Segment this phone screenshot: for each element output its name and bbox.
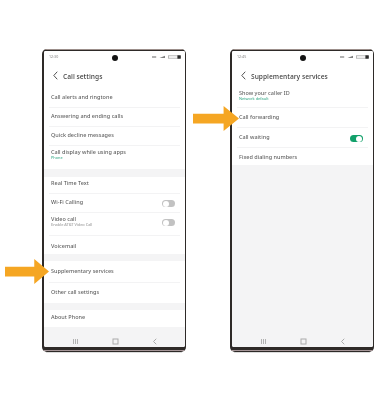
staticText: Quick decline messages	[51, 131, 114, 138]
staticText: Call forwarding	[239, 113, 280, 120]
button[interactable]: Voicemail	[44, 236, 185, 255]
button[interactable]: Wi-Fi Calling	[156, 197, 180, 209]
staticText: Phone	[51, 155, 63, 160]
button[interactable]: Video call	[44, 210, 185, 232]
button[interactable]: Video call	[156, 216, 180, 228]
staticText: 12:30	[49, 54, 59, 59]
staticText: Real Time Text	[51, 179, 89, 186]
staticText: Call settings	[63, 72, 103, 81]
staticText: Enable AT&T Video Call	[51, 222, 93, 227]
button[interactable]: About Phone	[44, 307, 185, 326]
button[interactable]: Back	[146, 334, 162, 347]
button[interactable]: Back	[334, 334, 350, 347]
button[interactable]: Home	[107, 334, 123, 347]
staticText: About Phone	[51, 313, 86, 320]
staticText: Network default	[239, 96, 269, 101]
button[interactable]: Recents	[255, 334, 271, 347]
staticText: Answering and ending calls	[51, 112, 124, 119]
staticText: Supplementary services	[251, 72, 328, 81]
staticText: Show your caller ID	[239, 89, 290, 96]
button[interactable]: Answering and ending calls	[44, 106, 185, 125]
button[interactable]: Call waiting	[344, 132, 368, 144]
button[interactable]: Call alerts and ringtone	[44, 87, 185, 106]
staticText: Video call	[51, 215, 77, 222]
staticText: Supplementary services	[51, 267, 114, 274]
button[interactable]: Show your caller ID	[232, 84, 373, 106]
staticText: Call alerts and ringtone	[51, 93, 113, 100]
button[interactable]: Fixed dialing numbers	[232, 147, 373, 166]
button[interactable]: Other call settings	[44, 282, 185, 301]
button[interactable]: Back	[236, 68, 250, 82]
button[interactable]: Recents	[67, 334, 83, 347]
button[interactable]: Call waiting	[232, 127, 373, 146]
button[interactable]: Wi-Fi Calling	[44, 192, 185, 211]
staticText: Call display while using apps	[51, 148, 126, 155]
button[interactable]: Back	[48, 68, 62, 82]
button[interactable]: Supplementary services	[44, 261, 185, 280]
button[interactable]: Home	[295, 334, 311, 347]
staticText: Fixed dialing numbers	[239, 153, 298, 160]
button[interactable]: Call forwarding	[232, 107, 373, 126]
staticText: Other call settings	[51, 288, 100, 295]
button[interactable]: Real Time Text	[44, 173, 185, 192]
staticText: Wi-Fi Calling	[51, 198, 84, 205]
staticText: Voicemail	[51, 242, 77, 249]
button[interactable]: Quick decline messages	[44, 125, 185, 144]
button[interactable]: Call display while using apps	[44, 143, 185, 165]
staticText: 12:45	[237, 54, 247, 59]
staticText: Call waiting	[239, 133, 270, 140]
